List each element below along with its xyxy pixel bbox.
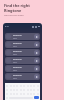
staticText: 00:32 [13, 77, 18, 79]
button[interactable]: Ringtone [5, 57, 40, 64]
staticText: 00:32 [13, 53, 18, 55]
staticText: 00:32 [13, 37, 18, 39]
staticText: Find the right [4, 3, 30, 8]
button[interactable]: Ringtone [5, 49, 40, 56]
staticText: Ringtone [4, 8, 22, 13]
button[interactable]: Play [34, 34, 39, 39]
staticText: 00:32 [13, 61, 18, 63]
button[interactable]: Ringtone [5, 73, 40, 80]
staticText: Ringtone [13, 66, 22, 69]
button[interactable]: Ringtone [5, 41, 40, 48]
staticText: Ringtone [13, 42, 22, 45]
staticText: that suits your mood [4, 14, 24, 17]
button[interactable]: Play [34, 50, 39, 55]
button[interactable]: Play [34, 42, 39, 47]
button[interactable]: Search [34, 96, 39, 99]
button[interactable]: Play [34, 74, 39, 79]
staticText: 00:32 [13, 45, 18, 47]
staticText: 9:41 [5, 25, 9, 28]
staticText: Ringtone [13, 50, 22, 53]
staticText: Ringtone [13, 34, 22, 37]
staticText: 00:32 [13, 69, 18, 71]
button[interactable]: Ringtone [5, 65, 40, 72]
button[interactable]: Play [34, 66, 39, 71]
staticText: Ringtone [13, 58, 22, 61]
staticText: Ringtone [13, 74, 22, 77]
button[interactable]: Ringtone [5, 33, 40, 40]
button[interactable]: Play [34, 58, 39, 63]
